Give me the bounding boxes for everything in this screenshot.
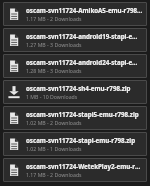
other: Zip file: [6, 162, 22, 178]
staticText: oscam-svn11724-stapi5-emu-r798.zip: [26, 110, 139, 118]
staticText: oscam-svn11724-sh4-emu-r798.zip: [26, 84, 131, 92]
staticText: 1 MB - 10 Downloads: [26, 93, 78, 100]
button[interactable]: Zip file: [3, 2, 147, 26]
staticText: oscam-svn11724-stapi-emu-r798.zip: [26, 136, 136, 144]
staticText: oscam-svn11724-android24-stapi-emu-r79…: [26, 58, 143, 66]
staticText: 1.27 MB - 3 Downloads: [26, 41, 82, 48]
staticText: oscam-svn11724-android19-stapi-emu-r79…: [26, 32, 143, 40]
staticText: oscam-svn11724-WetekPlay2-emu-r798.zip: [26, 162, 143, 170]
other: Zip file: [6, 58, 22, 74]
other: Zip file: [6, 110, 22, 126]
button[interactable]: Download: [3, 80, 147, 104]
staticText: 1.02 MB - 2 Downloads: [26, 119, 82, 126]
other: Download: [6, 84, 22, 100]
staticText: oscam-svn11724-AmikoA5-emu-r798.zip: [26, 6, 143, 14]
button[interactable]: Zip file: [3, 28, 147, 52]
other: Zip file: [6, 32, 22, 48]
button[interactable]: Zip file: [3, 106, 147, 130]
staticText: 1.17 MB - 2 Downloads: [26, 15, 82, 22]
button[interactable]: Zip file: [3, 132, 147, 156]
staticText: 1.28 MB - 3 Downloads: [26, 67, 82, 74]
staticText: 1.02 MB - 1 Downloads: [26, 145, 82, 152]
staticText: 1.17 MB - 2 Downloads: [26, 171, 82, 178]
button[interactable]: Zip file: [3, 158, 147, 182]
button[interactable]: Zip file: [3, 54, 147, 78]
other: Zip file: [6, 6, 22, 22]
other: Zip file: [6, 136, 22, 152]
